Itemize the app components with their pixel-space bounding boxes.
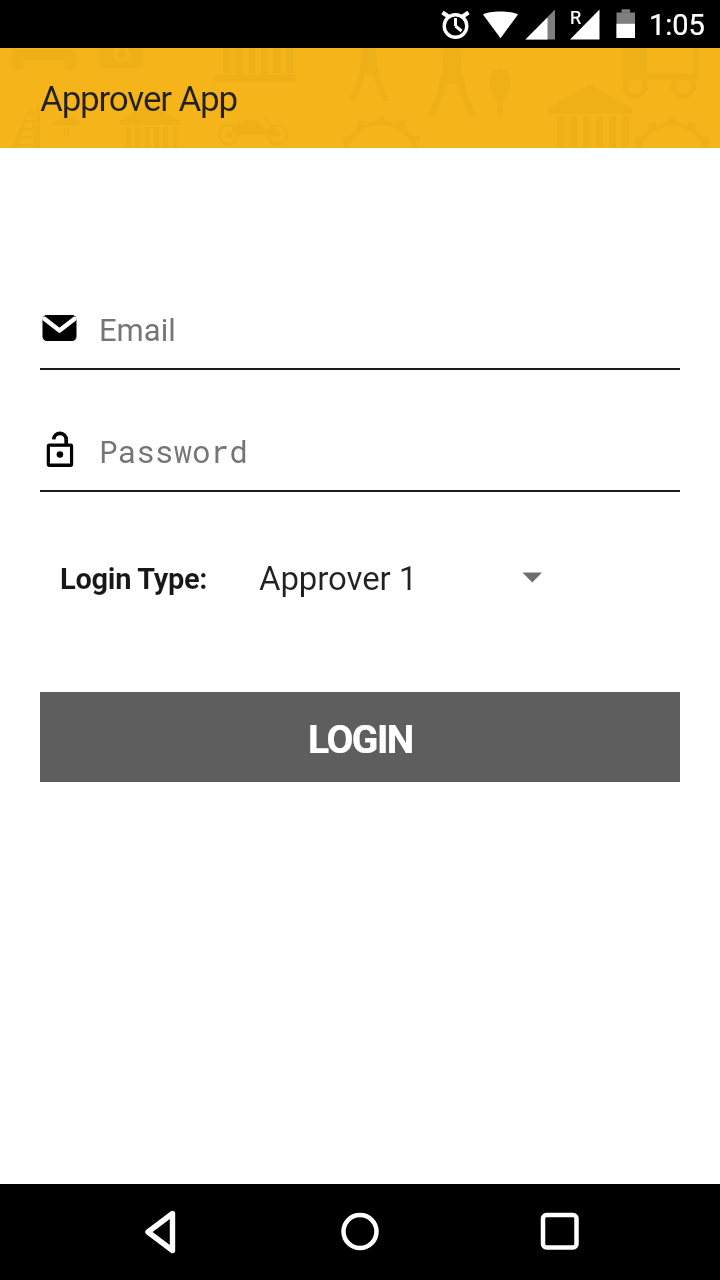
staticText: 1:05 [649, 8, 705, 42]
staticText: Password [99, 431, 248, 472]
button[interactable]: Home [312, 1184, 408, 1280]
button[interactable]: Approver 1 [255, 545, 555, 609]
staticText: Login Type: [60, 562, 208, 596]
staticText: Email [99, 312, 176, 348]
staticText: LOGIN [308, 717, 413, 763]
button[interactable]: Recent apps [512, 1184, 608, 1280]
button[interactable]: LOGIN [40, 692, 680, 782]
staticText: Approver App [40, 79, 237, 120]
staticText: Approver 1 [259, 559, 418, 598]
staticText: R [570, 7, 582, 28]
button[interactable]: Back [112, 1184, 208, 1280]
